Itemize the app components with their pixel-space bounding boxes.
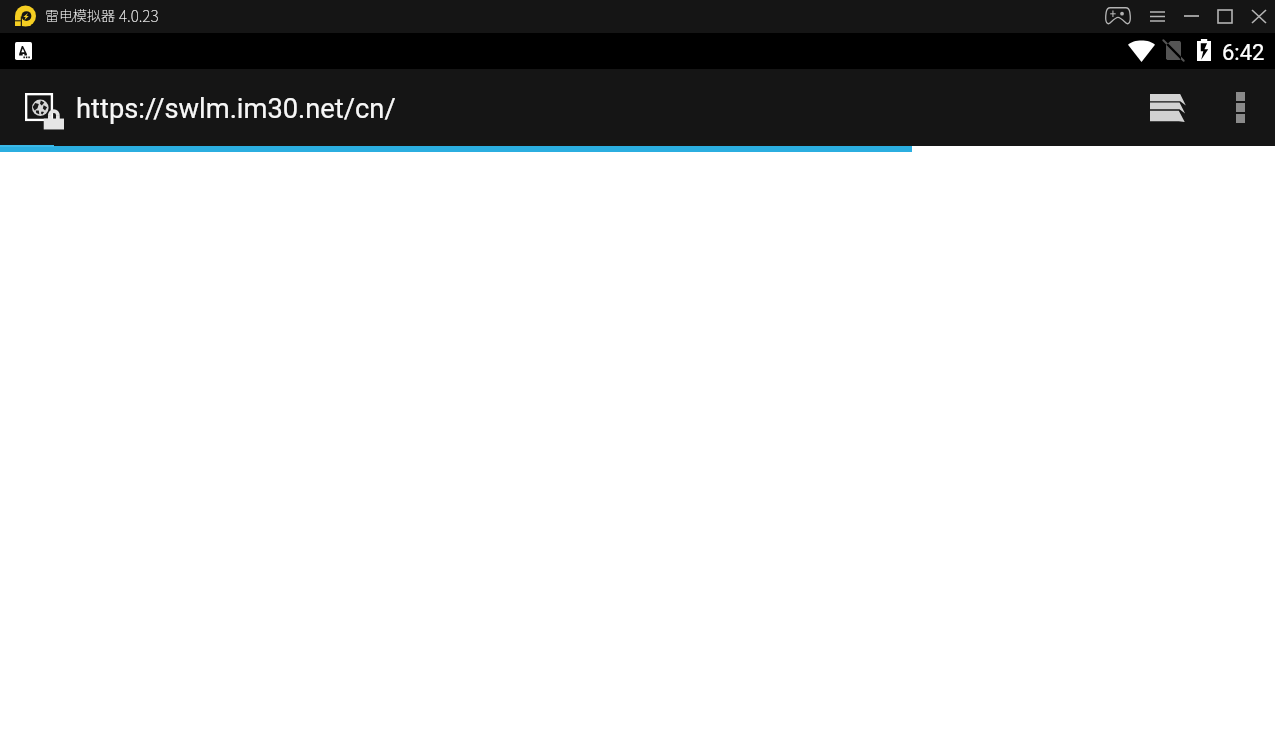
button[interactable]: More options <box>1206 69 1274 146</box>
staticText: 4.0.23 <box>119 4 159 26</box>
button[interactable]: Gamepad <box>1100 1 1136 30</box>
staticText: 雷电模拟器 <box>45 5 115 25</box>
button[interactable]: Close <box>1244 2 1274 31</box>
staticText: https://swlm.im30.net/cn/ <box>76 93 396 125</box>
button[interactable]: Site information <box>14 81 70 134</box>
button[interactable]: Tabs <box>1134 69 1202 146</box>
button[interactable]: Menu <box>1141 2 1173 30</box>
button[interactable]: https://swlm.im30.net/cn/ <box>70 69 1130 146</box>
staticText: 6:42 <box>1222 40 1265 66</box>
button[interactable]: Maximize <box>1210 2 1240 31</box>
button[interactable]: Minimize <box>1176 1 1206 30</box>
